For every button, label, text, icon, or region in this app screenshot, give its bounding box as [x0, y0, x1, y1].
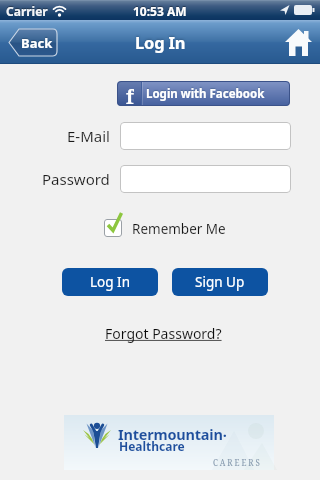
staticText: E-Mail: [67, 126, 110, 146]
button[interactable]: [284, 28, 316, 58]
button[interactable]: [120, 122, 291, 150]
staticText: CAREERS: [213, 457, 262, 468]
staticText: Password: [42, 169, 110, 189]
button[interactable]: [120, 165, 291, 193]
button[interactable]: f: [117, 81, 290, 106]
staticText: Intermountain‧: [118, 424, 227, 444]
button[interactable]: Intermountain‧: [64, 415, 274, 470]
staticText: Login with Facebook: [146, 86, 265, 102]
staticText: Remember Me: [132, 220, 226, 238]
staticText: 10:53 AM: [133, 3, 187, 19]
button[interactable]: Sign Up: [172, 268, 268, 296]
staticText: Log In: [90, 273, 130, 291]
button[interactable]: Log In: [62, 268, 158, 296]
button[interactable]: Remember Me: [104, 210, 224, 240]
button[interactable]: Forgot Password?: [105, 324, 222, 343]
button[interactable]: Back: [8, 28, 58, 57]
staticText: Back: [21, 34, 53, 52]
staticText: Sign Up: [195, 273, 245, 291]
staticText: Healthcare: [119, 438, 185, 454]
staticText: Carrier: [6, 3, 48, 19]
staticText: Log In: [135, 31, 186, 53]
staticText: f: [126, 84, 134, 106]
